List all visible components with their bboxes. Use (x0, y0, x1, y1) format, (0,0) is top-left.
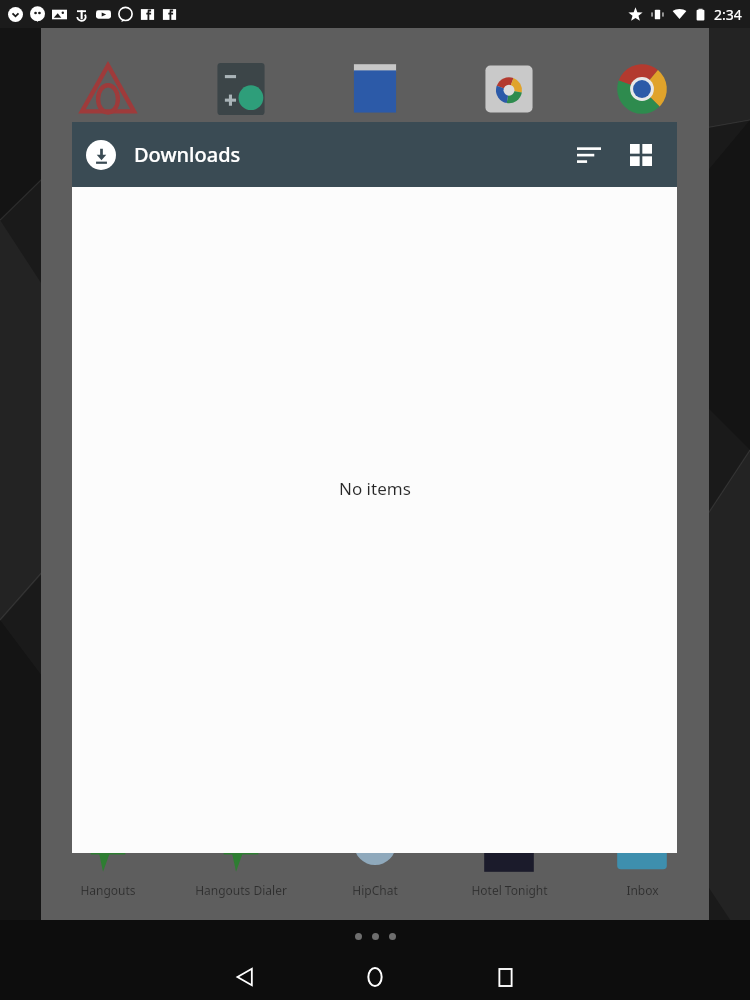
staticText: Hangouts (80, 882, 136, 898)
staticText: No items (339, 477, 411, 500)
staticText: Hotel Tonight (471, 882, 548, 898)
button[interactable]: App icon (77, 816, 139, 878)
button[interactable]: Sort (567, 133, 611, 177)
button[interactable]: App icon (611, 816, 673, 878)
button[interactable]: Grid view (619, 133, 663, 177)
button[interactable]: App icon (210, 816, 272, 878)
button[interactable]: App icon (344, 58, 406, 120)
staticText: Hangouts Dialer (195, 882, 287, 898)
staticText: HipChat (352, 882, 398, 898)
staticText: Downloads (134, 141, 241, 168)
button[interactable]: App icon (77, 58, 139, 120)
button[interactable]: Back (214, 954, 276, 1000)
button[interactable]: App icon (478, 58, 540, 120)
button[interactable]: Recents (474, 954, 536, 1000)
button[interactable]: App icon (478, 816, 540, 878)
button[interactable]: Home (344, 954, 406, 1000)
button[interactable]: Downloads (86, 140, 116, 170)
button[interactable]: App icon (210, 58, 272, 120)
staticText: Inbox (626, 882, 659, 898)
button[interactable]: App icon (611, 58, 673, 120)
button[interactable]: App icon (344, 816, 406, 878)
staticText: 2:34 (714, 5, 742, 24)
